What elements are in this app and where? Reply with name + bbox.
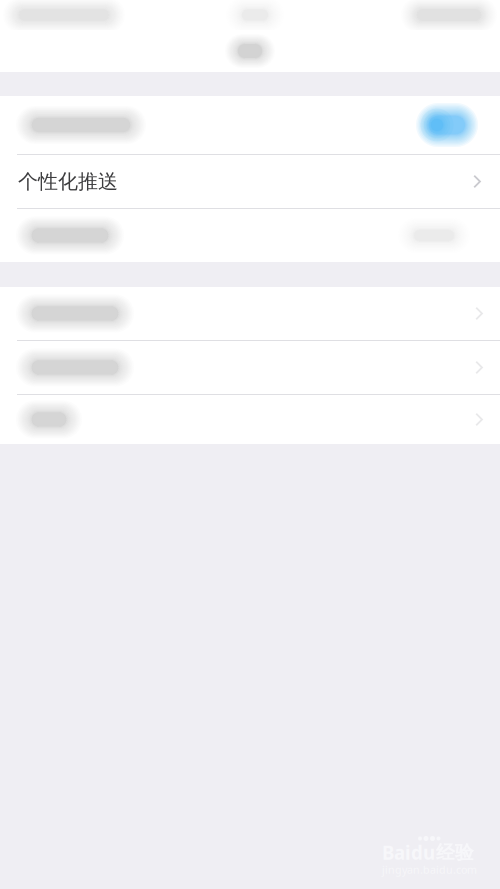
button[interactable] bbox=[0, 341, 500, 394]
button[interactable] bbox=[0, 395, 500, 444]
staticText: 个性化推送 bbox=[18, 169, 118, 194]
button[interactable] bbox=[0, 96, 500, 154]
button[interactable]: 个性化推送 bbox=[0, 155, 500, 208]
button[interactable] bbox=[0, 209, 500, 262]
button[interactable] bbox=[0, 287, 500, 340]
staticText: Baidu bbox=[382, 840, 435, 865]
staticText: 经验 bbox=[436, 841, 474, 864]
